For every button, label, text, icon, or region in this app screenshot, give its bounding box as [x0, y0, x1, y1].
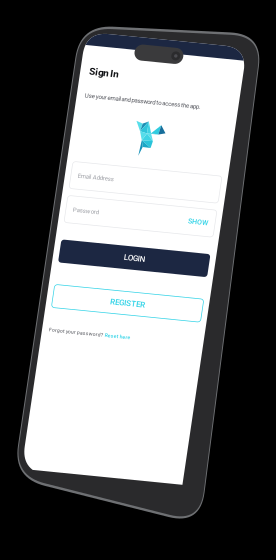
staticText: REGISTER	[63, 259, 98, 268]
staticText: Forgot your password?	[7, 294, 61, 300]
button[interactable]: LOGIN	[6, 207, 156, 230]
staticText: Use your email and password to access th…	[8, 59, 125, 66]
button[interactable]: REGISTER	[6, 252, 156, 275]
